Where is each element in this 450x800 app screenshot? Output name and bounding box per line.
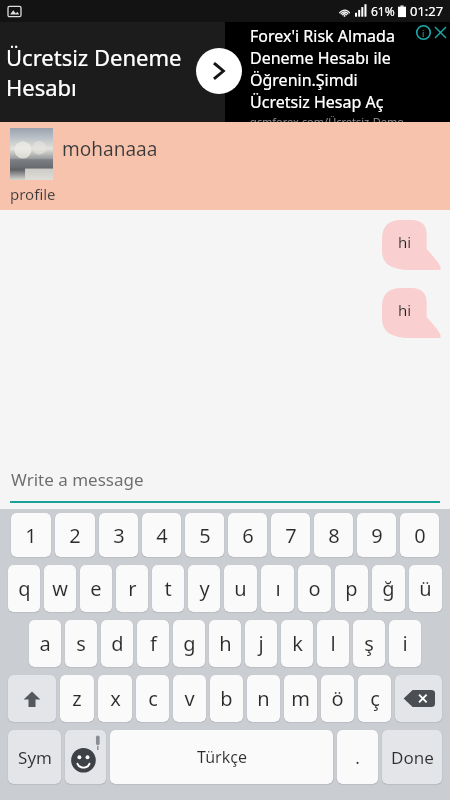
button[interactable]: k — [281, 620, 313, 667]
staticText: t — [164, 575, 172, 602]
button[interactable]: Shift — [8, 675, 56, 722]
button[interactable]: hi — [382, 220, 440, 270]
button[interactable]: s — [65, 620, 97, 667]
staticText: m — [291, 685, 310, 712]
button[interactable]: . — [337, 730, 378, 784]
button[interactable]: Open offer — [196, 48, 242, 94]
staticText: . — [355, 746, 360, 769]
button[interactable]: y — [188, 565, 220, 612]
staticText: Write a message — [11, 468, 144, 491]
staticText: Ücretsiz Deneme — [6, 42, 182, 72]
button[interactable]: ö — [321, 675, 354, 722]
button[interactable]: f — [137, 620, 169, 667]
staticText: 0 — [414, 522, 426, 549]
button[interactable]: z — [60, 675, 94, 722]
button[interactable]: m — [284, 675, 317, 722]
button[interactable]: v — [173, 675, 206, 722]
staticText: Ücretsiz Hesap Aç — [250, 91, 384, 113]
staticText: 1 — [25, 522, 37, 549]
staticText: Deneme Hesabı ile — [250, 47, 391, 69]
button[interactable]: c — [136, 675, 169, 722]
button[interactable]: 6 — [228, 513, 267, 557]
button[interactable]: ı — [261, 565, 294, 612]
staticText: q — [18, 575, 31, 602]
staticText: y — [199, 575, 210, 602]
button[interactable]: Emoji — [65, 730, 106, 784]
staticText: n — [257, 685, 270, 712]
button[interactable]: e — [80, 565, 112, 612]
staticText: 3 — [113, 522, 125, 549]
button[interactable]: ü — [409, 565, 442, 612]
button[interactable]: Close ad — [433, 25, 448, 40]
button[interactable]: ç — [358, 675, 391, 722]
button[interactable]: l — [317, 620, 349, 667]
staticText: v — [184, 685, 195, 712]
button[interactable]: b — [210, 675, 243, 722]
staticText: mohanaaa — [62, 136, 158, 162]
staticText: 4 — [156, 522, 168, 549]
button[interactable]: t — [152, 565, 184, 612]
staticText: ğ — [382, 575, 395, 602]
button[interactable]: n — [247, 675, 280, 722]
staticText: b — [220, 685, 233, 712]
button[interactable]: w — [44, 565, 76, 612]
button[interactable]: g — [173, 620, 205, 667]
staticText: 7 — [285, 522, 297, 549]
button[interactable]: q — [8, 565, 40, 612]
button[interactable]: Türkçe — [110, 730, 333, 784]
staticText: ş — [364, 630, 374, 657]
button[interactable]: d — [101, 620, 133, 667]
button[interactable]: hi — [382, 288, 440, 338]
button[interactable]: p — [335, 565, 368, 612]
button[interactable]: Backspace — [395, 675, 442, 722]
button[interactable]: r — [116, 565, 148, 612]
button[interactable]: Done — [382, 730, 442, 784]
button[interactable]: 7 — [271, 513, 310, 557]
staticText: Sym — [18, 746, 52, 769]
staticText: ç — [370, 685, 380, 712]
staticText: d — [111, 630, 124, 657]
staticText: profile — [10, 184, 56, 204]
staticText: a — [39, 630, 51, 657]
staticText: Hesabı — [6, 72, 77, 102]
staticText: Forex'i Risk Almada — [250, 25, 395, 47]
button[interactable]: x — [98, 675, 132, 722]
staticText: Türkçe — [197, 746, 247, 768]
staticText: ı — [275, 575, 281, 602]
button[interactable]: 1 — [11, 513, 51, 557]
button[interactable]: mohanaaa — [0, 122, 450, 210]
staticText: i — [422, 27, 425, 39]
button[interactable]: 0 — [400, 513, 439, 557]
button[interactable]: 3 — [99, 513, 138, 557]
button[interactable]: u — [224, 565, 257, 612]
staticText: w — [52, 575, 68, 602]
button[interactable]: j — [245, 620, 277, 667]
staticText: hi — [398, 300, 412, 320]
staticText: c — [148, 685, 158, 712]
button[interactable]: ğ — [372, 565, 405, 612]
button[interactable]: 9 — [357, 513, 396, 557]
button[interactable]: Ad info — [416, 25, 431, 40]
button[interactable]: 8 — [314, 513, 353, 557]
staticText: hi — [398, 232, 412, 252]
staticText: s — [76, 630, 86, 657]
button[interactable]: i — [389, 620, 421, 667]
button[interactable]: 4 — [142, 513, 181, 557]
staticText: p — [345, 575, 358, 602]
staticText: 5 — [199, 522, 211, 549]
staticText: h — [219, 630, 232, 657]
button[interactable]: 5 — [185, 513, 224, 557]
button[interactable]: Sym — [8, 730, 61, 784]
staticText: ö — [331, 685, 344, 712]
button[interactable]: ş — [353, 620, 385, 667]
button[interactable]: Write a message — [0, 453, 450, 509]
staticText: z — [72, 685, 82, 712]
staticText: 8 — [328, 522, 340, 549]
button[interactable]: h — [209, 620, 241, 667]
button[interactable]: 2 — [55, 513, 95, 557]
button[interactable]: o — [298, 565, 331, 612]
staticText: g — [183, 630, 196, 657]
staticText: 2 — [69, 522, 81, 549]
button[interactable]: a — [29, 620, 61, 667]
staticText: i — [402, 630, 408, 657]
